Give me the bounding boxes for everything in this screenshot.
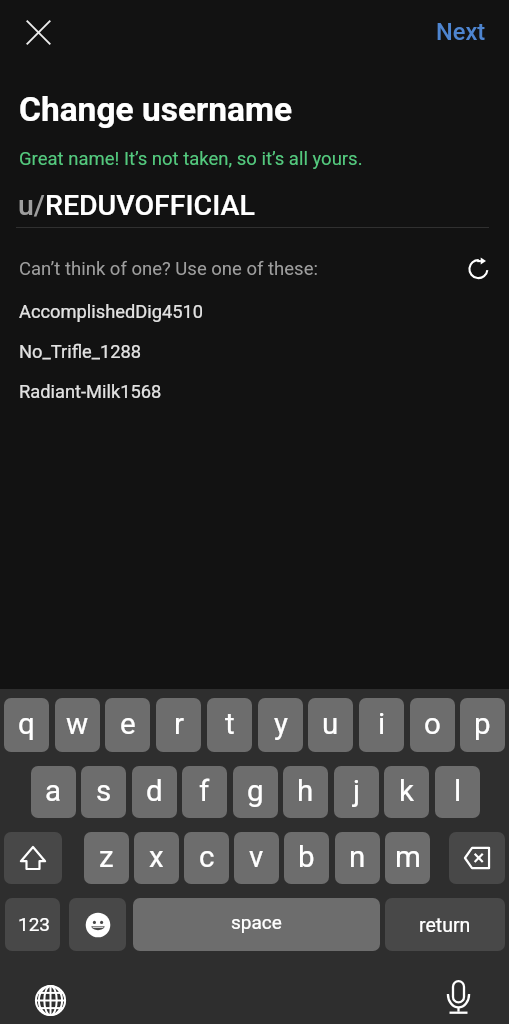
staticText: No_Trifle_1288 bbox=[19, 341, 142, 362]
staticText: x bbox=[149, 840, 164, 875]
button[interactable]: m bbox=[385, 832, 430, 884]
button[interactable]: c bbox=[184, 832, 229, 884]
staticText: u bbox=[322, 707, 339, 742]
staticText: s bbox=[96, 774, 112, 809]
button[interactable]: f bbox=[182, 766, 227, 818]
button[interactable]: b bbox=[284, 832, 329, 884]
staticText: l bbox=[454, 774, 462, 809]
button[interactable]: No_Trifle_1288 bbox=[0, 332, 509, 372]
staticText: r bbox=[174, 707, 184, 742]
button[interactable]: x bbox=[134, 832, 179, 884]
button[interactable]: p bbox=[460, 698, 505, 752]
staticText: c bbox=[199, 840, 215, 875]
button[interactable]: s bbox=[81, 766, 126, 818]
staticText: space bbox=[231, 911, 282, 933]
button[interactable]: k bbox=[384, 766, 429, 818]
button[interactable]: d bbox=[132, 766, 177, 818]
staticText: p bbox=[474, 707, 491, 742]
staticText: Can’t think of one? Use one of these: bbox=[19, 258, 318, 280]
button[interactable]: Emoji bbox=[69, 898, 126, 951]
button[interactable]: w bbox=[55, 698, 100, 752]
button[interactable]: Switch keyboard bbox=[33, 983, 68, 1018]
button[interactable]: a bbox=[31, 766, 76, 818]
staticText: y bbox=[274, 707, 288, 742]
staticText: u/REDUVOFFICIAL bbox=[18, 189, 255, 222]
button[interactable]: n bbox=[335, 832, 380, 884]
button[interactable]: Close bbox=[14, 8, 62, 56]
staticText: k bbox=[399, 774, 414, 809]
button[interactable]: Radiant-Milk1568 bbox=[0, 372, 509, 412]
staticText: Radiant-Milk1568 bbox=[19, 381, 162, 402]
button[interactable]: Refresh suggestions bbox=[457, 249, 495, 287]
button[interactable]: Shift bbox=[4, 832, 62, 884]
button[interactable]: v bbox=[234, 832, 279, 884]
staticText: a bbox=[45, 774, 62, 809]
button[interactable]: l bbox=[435, 766, 480, 818]
staticText: m bbox=[395, 840, 421, 875]
button[interactable]: space bbox=[133, 898, 380, 951]
staticText: j bbox=[353, 774, 361, 809]
button[interactable]: Backspace bbox=[449, 832, 505, 884]
button[interactable]: i bbox=[359, 698, 404, 752]
button[interactable]: Next bbox=[422, 10, 500, 54]
staticText: w bbox=[66, 707, 89, 742]
button[interactable]: AccomplishedDig4510 bbox=[0, 292, 509, 332]
button[interactable]: j bbox=[334, 766, 379, 818]
staticText: v bbox=[249, 840, 264, 875]
staticText: b bbox=[298, 840, 315, 875]
staticText: Change username bbox=[19, 90, 293, 129]
button[interactable]: z bbox=[84, 832, 129, 884]
staticText: f bbox=[199, 774, 210, 809]
staticText: AccomplishedDig4510 bbox=[19, 301, 204, 322]
staticText: o bbox=[424, 707, 441, 742]
button[interactable]: g bbox=[233, 766, 278, 818]
staticText: d bbox=[146, 774, 163, 809]
button[interactable]: return bbox=[385, 898, 505, 951]
staticText: t bbox=[225, 707, 235, 742]
staticText: h bbox=[297, 774, 314, 809]
staticText: 123 bbox=[18, 913, 51, 935]
staticText: g bbox=[247, 774, 264, 809]
staticText: return bbox=[419, 914, 471, 937]
staticText: Next bbox=[436, 18, 486, 46]
button[interactable]: q bbox=[4, 698, 49, 752]
staticText: z bbox=[99, 840, 114, 875]
button[interactable]: e bbox=[105, 698, 150, 752]
button[interactable]: r bbox=[156, 698, 201, 752]
staticText: q bbox=[18, 707, 35, 742]
button[interactable]: Dictation bbox=[444, 978, 474, 1018]
staticText: n bbox=[349, 840, 366, 875]
button[interactable]: h bbox=[283, 766, 328, 818]
button[interactable]: u bbox=[308, 698, 353, 752]
staticText: Great name! It’s not taken, so it’s all … bbox=[19, 148, 363, 170]
button[interactable]: y bbox=[258, 698, 303, 752]
staticText: i bbox=[378, 707, 386, 742]
button[interactable]: t bbox=[207, 698, 252, 752]
staticText: e bbox=[120, 707, 136, 742]
button[interactable]: o bbox=[410, 698, 455, 752]
button[interactable]: 123 bbox=[5, 898, 60, 951]
